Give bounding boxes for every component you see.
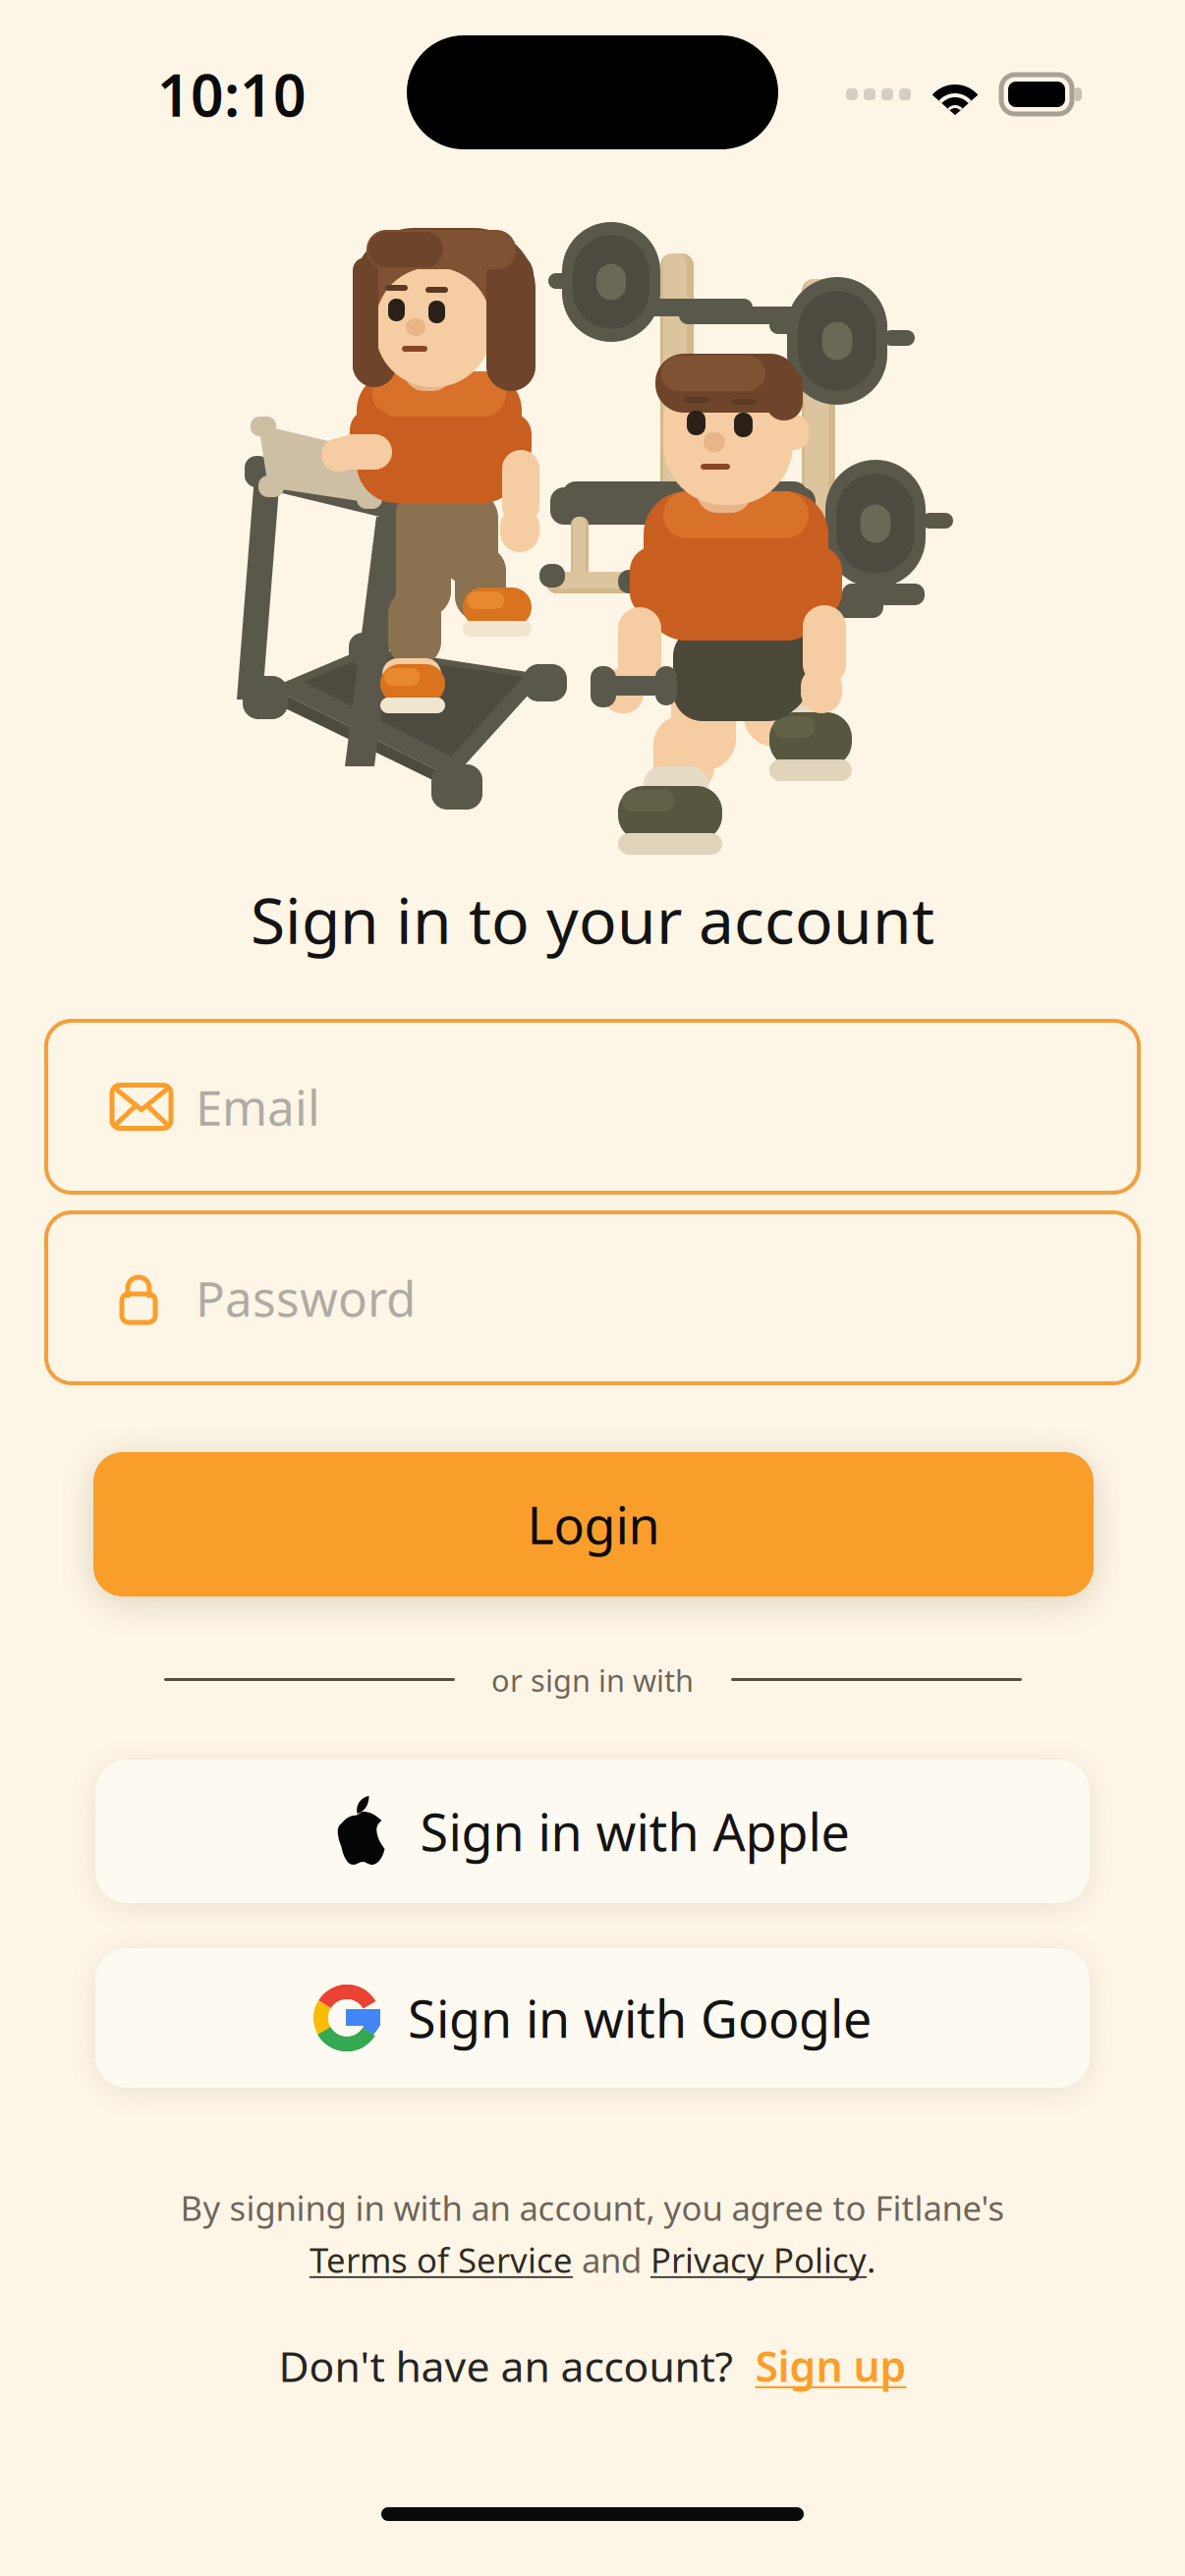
staticText: Sign up [755, 2338, 906, 2394]
button[interactable]: Privacy Policy [650, 2237, 867, 2282]
button[interactable]: Sign in with Google [95, 1948, 1090, 2088]
button[interactable]: Email [46, 1021, 1139, 1193]
button[interactable]: Password [46, 1212, 1139, 1383]
staticText: Sign in with Apple [420, 1797, 849, 1865]
staticText: Sign in with Google [408, 1984, 872, 2052]
staticText: Sign in to your account [251, 878, 934, 961]
button[interactable]: Sign in with Apple [95, 1760, 1090, 1903]
staticText: or sign in with [491, 1660, 694, 1700]
staticText: Password [196, 1266, 416, 1330]
button[interactable]: Sign up [755, 2338, 906, 2394]
staticText: Email [196, 1075, 320, 1139]
staticText: Privacy Policy [650, 2237, 867, 2282]
staticText: 10:10 [157, 56, 307, 133]
staticText: By signing in with an account, you agree… [180, 2185, 1005, 2230]
staticText: and [573, 2237, 650, 2282]
staticText: Terms of Service [310, 2237, 573, 2282]
staticText: Don't have an account? [279, 2338, 734, 2394]
staticText: Login [527, 1490, 660, 1558]
staticText: . [867, 2237, 875, 2282]
button[interactable]: Terms of Service [310, 2237, 573, 2282]
button[interactable]: Login [93, 1452, 1094, 1596]
